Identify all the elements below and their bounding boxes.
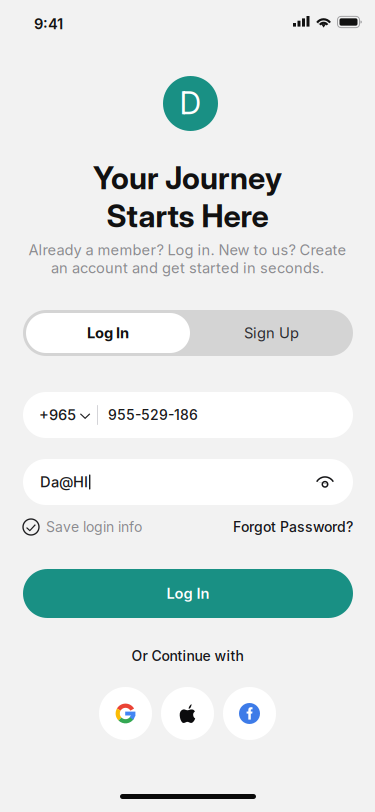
staticText: Your Journey <box>93 159 282 196</box>
staticText: +965 <box>39 406 76 424</box>
button[interactable]: Continue with Apple <box>161 687 214 740</box>
staticText: Da@HI <box>40 473 88 491</box>
staticText: Or Continue with <box>131 647 243 664</box>
button[interactable]: Save login info <box>23 516 142 538</box>
staticText: Log In <box>87 324 129 342</box>
button[interactable]: Show password <box>307 459 343 505</box>
button[interactable]: Continue with Facebook <box>223 687 276 740</box>
staticText: Log In <box>166 585 209 602</box>
staticText: D <box>179 84 201 121</box>
staticText: Starts Here <box>106 197 268 234</box>
button[interactable]: Log In <box>26 313 190 353</box>
button[interactable]: Forgot Password? <box>233 516 353 538</box>
button[interactable]: Continue with Google <box>99 687 152 740</box>
staticText: Forgot Password? <box>233 518 353 535</box>
button[interactable]: +965 <box>39 392 113 438</box>
button[interactable]: Log In <box>23 569 353 618</box>
button[interactable]: Sign Up <box>190 313 353 353</box>
staticText: an account and get started in seconds. <box>51 259 324 277</box>
staticText: Sign Up <box>244 324 299 342</box>
staticText: 9:41 <box>34 15 63 33</box>
staticText: Already a member? Log in. New to us? Cre… <box>28 241 346 259</box>
staticText: 955-529-186 <box>108 406 198 423</box>
staticText: Save login info <box>46 518 142 535</box>
